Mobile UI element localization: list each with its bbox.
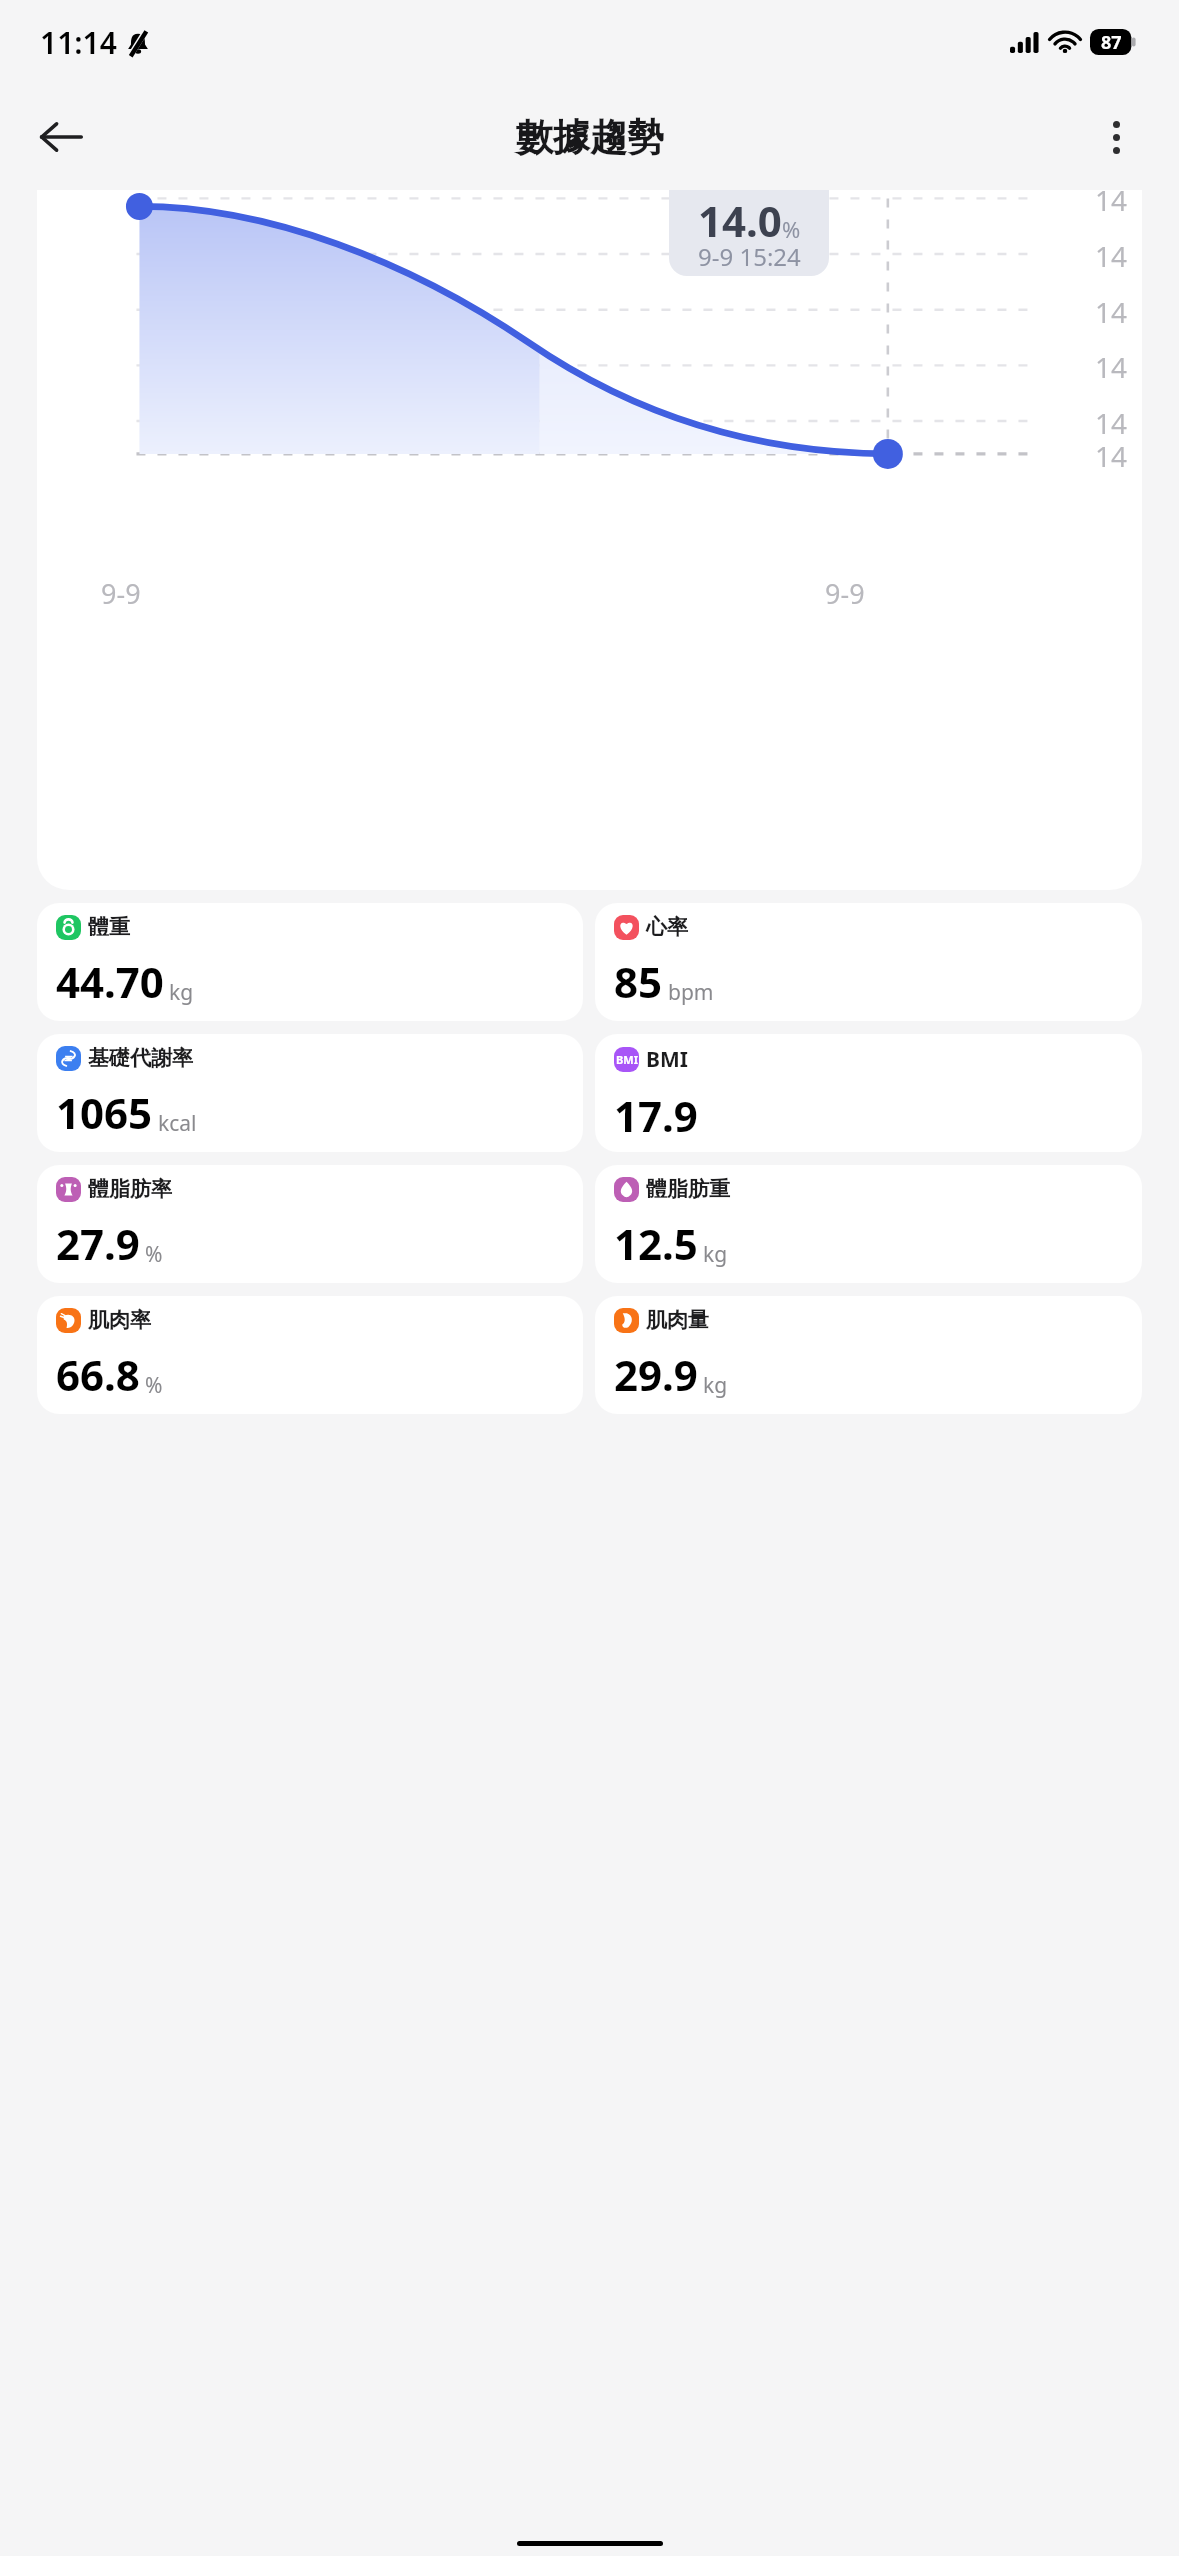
staticText: 14 — [1095, 237, 1128, 275]
staticText: 9-9 15:24 — [698, 240, 801, 273]
button[interactable]: 14 — [37, 190, 1142, 890]
staticText: BMI — [646, 1045, 688, 1074]
staticText: 體重 — [88, 914, 130, 940]
button[interactable]: 體脂肪重 — [595, 1165, 1142, 1283]
button[interactable]: 體重 — [37, 903, 583, 1021]
staticText: 肌肉量 — [646, 1307, 709, 1333]
staticText: 29.9 — [614, 1346, 698, 1403]
staticText: 數據趨勢 — [516, 114, 664, 161]
staticText: 14 — [1095, 293, 1128, 331]
staticText: 12.5 — [614, 1215, 698, 1272]
staticText: % — [782, 214, 801, 244]
staticText: kcal — [158, 1109, 197, 1138]
staticText: 心率 — [646, 914, 688, 940]
staticText: 體脂肪率 — [88, 1176, 172, 1202]
staticText: 14 — [1095, 437, 1128, 475]
staticText: BMI — [616, 1052, 638, 1067]
button[interactable]: BMI — [595, 1034, 1142, 1152]
button[interactable]: 肌肉率 — [37, 1296, 583, 1414]
staticText: % — [145, 1240, 163, 1269]
staticText: % — [145, 1371, 163, 1400]
staticText: 14 — [1095, 348, 1128, 386]
staticText: 1065 — [56, 1084, 153, 1141]
button[interactable]: 體脂肪率 — [37, 1165, 583, 1283]
staticText: 27.9 — [56, 1215, 140, 1272]
staticText: 基礎代謝率 — [88, 1045, 193, 1071]
button[interactable]: Back — [24, 100, 98, 174]
staticText: 14 — [1095, 404, 1128, 442]
staticText: kg — [169, 978, 194, 1007]
staticText: 9-9 — [825, 575, 865, 612]
staticText: 87 — [1101, 30, 1122, 55]
staticText: 44.70 — [56, 953, 164, 1010]
staticText: 體脂肪重 — [646, 1176, 730, 1202]
staticText: 17.9 — [614, 1087, 698, 1142]
staticText: 11:14 — [40, 22, 117, 63]
button[interactable]: 肌肉量 — [595, 1296, 1142, 1414]
button[interactable]: 心率 — [595, 903, 1142, 1021]
staticText: 14 — [1095, 190, 1128, 219]
staticText: 肌肉率 — [88, 1307, 151, 1333]
staticText: kg — [703, 1240, 728, 1269]
staticText: 14.0 — [698, 192, 782, 249]
staticText: 66.8 — [56, 1346, 140, 1403]
button[interactable]: 基礎代謝率 — [37, 1034, 583, 1152]
staticText: 85 — [614, 953, 663, 1010]
staticText: 9-9 — [101, 575, 141, 612]
button[interactable]: More options — [1079, 100, 1153, 174]
staticText: kg — [703, 1371, 728, 1400]
staticText: bpm — [668, 978, 714, 1007]
